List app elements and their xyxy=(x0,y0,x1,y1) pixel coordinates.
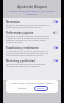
button[interactable]: Cancelar xyxy=(16,86,29,91)
staticText: Aceptar xyxy=(37,87,45,90)
button[interactable]: Aceptar xyxy=(34,86,48,91)
staticText: Preferencias y ajustes xyxy=(6,31,34,34)
button[interactable]: Usamos cookies para analizar el uso y mo… xyxy=(5,10,59,16)
button[interactable]: Marketing y publicidad xyxy=(53,59,58,62)
staticText: Permiten el funcionamiento basico del si… xyxy=(6,24,50,28)
staticText: Puedes cambiar tu eleccion en cualquier … xyxy=(9,82,55,84)
staticText: Estadisticas y rendimiento xyxy=(6,46,39,49)
staticText: Recuerdan las opciones que eliges, como … xyxy=(6,35,50,43)
button[interactable]: Estadisticas y rendimiento xyxy=(53,46,58,49)
staticText: Ajustes de Bloqueo xyxy=(6,5,58,9)
staticText: Se utilizan para mostrarte anuncios que … xyxy=(6,63,50,67)
button[interactable]: Estadisticas y rendimiento xyxy=(6,46,58,56)
button[interactable]: Necesarias xyxy=(53,20,58,23)
staticText: Necesarias xyxy=(6,20,20,23)
button[interactable]: Preferencias y ajustes xyxy=(6,31,58,43)
staticText: Cancelar xyxy=(18,87,27,90)
staticText: Nos permiten contar las visitas y conoce… xyxy=(6,50,50,56)
button[interactable]: Marketing y publicidad xyxy=(6,59,58,67)
button[interactable]: Preferencias y ajustes xyxy=(53,31,58,34)
staticText: Marketing y publicidad xyxy=(6,59,35,62)
button[interactable]: Necesarias xyxy=(6,20,58,28)
